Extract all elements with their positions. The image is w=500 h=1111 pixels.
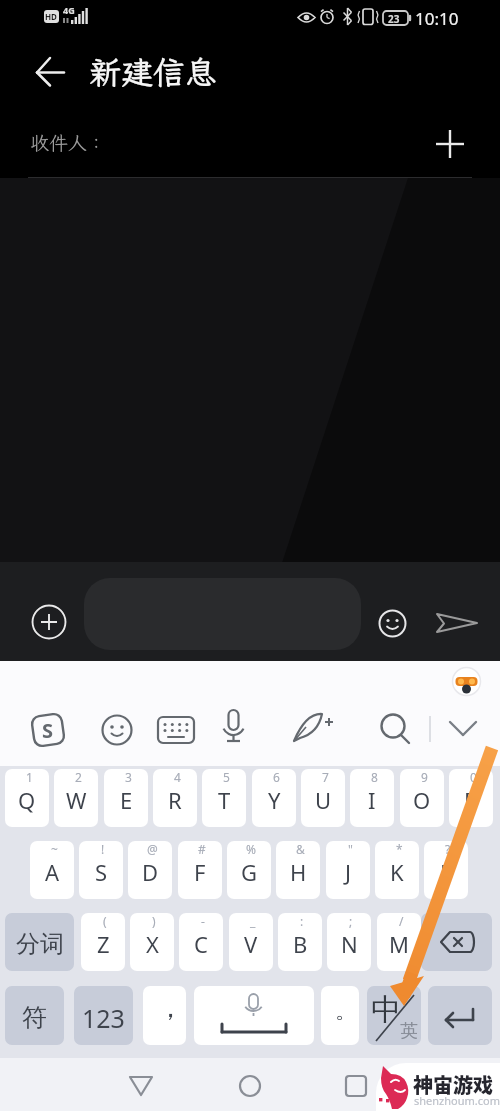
staticText: C: [194, 929, 208, 959]
staticText: 23: [388, 12, 400, 26]
staticText: 123: [82, 1001, 125, 1035]
button[interactable]: _: [229, 913, 273, 971]
staticText: HD: [45, 11, 57, 22]
staticText: ): [152, 913, 156, 929]
button[interactable]: [448, 714, 478, 742]
staticText: #: [198, 841, 206, 857]
staticText: &: [296, 841, 305, 857]
button[interactable]: [436, 604, 478, 642]
button[interactable]: [335, 1066, 377, 1106]
staticText: S: [95, 857, 108, 887]
button[interactable]: [31, 604, 67, 640]
button[interactable]: 123: [74, 986, 133, 1045]
button[interactable]: 7: [301, 769, 345, 827]
button[interactable]: ?: [424, 841, 468, 899]
staticText: N: [341, 929, 358, 959]
button[interactable]: (: [81, 913, 125, 971]
button[interactable]: [26, 52, 70, 92]
staticText: 神宙游戏: [413, 1070, 493, 1099]
staticText: L: [440, 857, 452, 887]
button[interactable]: 3: [104, 769, 148, 827]
button[interactable]: %: [227, 841, 271, 899]
staticText: H: [290, 857, 307, 887]
staticText: 6: [273, 769, 280, 785]
staticText: 0: [470, 769, 477, 785]
button[interactable]: [120, 1066, 162, 1106]
staticText: shenzhoum.com: [414, 1093, 500, 1108]
staticText: X: [146, 929, 159, 959]
button[interactable]: [292, 711, 334, 751]
staticText: W: [66, 785, 87, 815]
staticText: A: [45, 857, 60, 887]
staticText: -: [201, 913, 205, 929]
button[interactable]: 中: [367, 986, 421, 1045]
button[interactable]: #: [178, 841, 222, 899]
button[interactable]: [430, 124, 470, 164]
button[interactable]: ;: [327, 913, 371, 971]
button[interactable]: [194, 986, 314, 1045]
button[interactable]: 。: [321, 986, 359, 1045]
staticText: 分词: [16, 929, 64, 959]
staticText: R: [168, 785, 182, 815]
staticText: *: [396, 841, 403, 857]
button[interactable]: &: [276, 841, 320, 899]
staticText: 9: [421, 769, 428, 785]
staticText: K: [390, 857, 404, 887]
button[interactable]: ，: [143, 986, 186, 1045]
button[interactable]: ): [130, 913, 174, 971]
button[interactable]: 分词: [5, 913, 74, 971]
button[interactable]: [378, 712, 414, 748]
staticText: M: [389, 929, 409, 959]
staticText: 收件人：: [30, 130, 107, 155]
staticText: I: [368, 785, 376, 815]
button[interactable]: [421, 913, 492, 971]
button[interactable]: [218, 709, 249, 753]
button[interactable]: [157, 714, 195, 746]
button[interactable]: 9: [400, 769, 444, 827]
staticText: 2: [75, 769, 82, 785]
button[interactable]: :: [278, 913, 322, 971]
staticText: /: [399, 913, 404, 929]
staticText: 7: [322, 769, 329, 785]
staticText: B: [293, 929, 308, 959]
staticText: 4: [174, 769, 181, 785]
button[interactable]: [428, 986, 492, 1045]
button[interactable]: 0: [449, 769, 493, 827]
staticText: %: [246, 841, 256, 857]
button[interactable]: 符: [5, 986, 64, 1045]
button[interactable]: [378, 609, 407, 638]
button[interactable]: !: [79, 841, 123, 899]
button[interactable]: ": [326, 841, 370, 899]
button[interactable]: *: [375, 841, 419, 899]
button[interactable]: 6: [252, 769, 296, 827]
staticText: :: [300, 913, 304, 929]
button[interactable]: @: [128, 841, 172, 899]
button[interactable]: 4: [153, 769, 197, 827]
button[interactable]: S: [28, 710, 68, 750]
staticText: 10:10: [415, 7, 459, 30]
button[interactable]: -: [179, 913, 223, 971]
staticText: 。: [335, 997, 357, 1025]
staticText: 1: [26, 769, 33, 785]
button[interactable]: 8: [350, 769, 394, 827]
staticText: 英: [400, 1020, 418, 1043]
staticText: S: [42, 717, 54, 744]
staticText: _: [250, 913, 256, 929]
staticText: P: [464, 785, 478, 815]
button[interactable]: [101, 714, 133, 746]
button[interactable]: 5: [202, 769, 246, 827]
button[interactable]: 1: [5, 769, 49, 827]
staticText: G: [241, 857, 258, 887]
staticText: D: [142, 857, 159, 887]
staticText: ~: [51, 841, 58, 857]
staticText: 中: [371, 991, 401, 1029]
button[interactable]: [229, 1066, 271, 1106]
button[interactable]: /: [377, 913, 421, 971]
staticText: Y: [268, 785, 281, 815]
staticText: E: [120, 785, 133, 815]
staticText: F: [194, 857, 206, 887]
staticText: (: [103, 913, 107, 929]
button[interactable]: ~: [30, 841, 74, 899]
button[interactable]: 2: [54, 769, 98, 827]
